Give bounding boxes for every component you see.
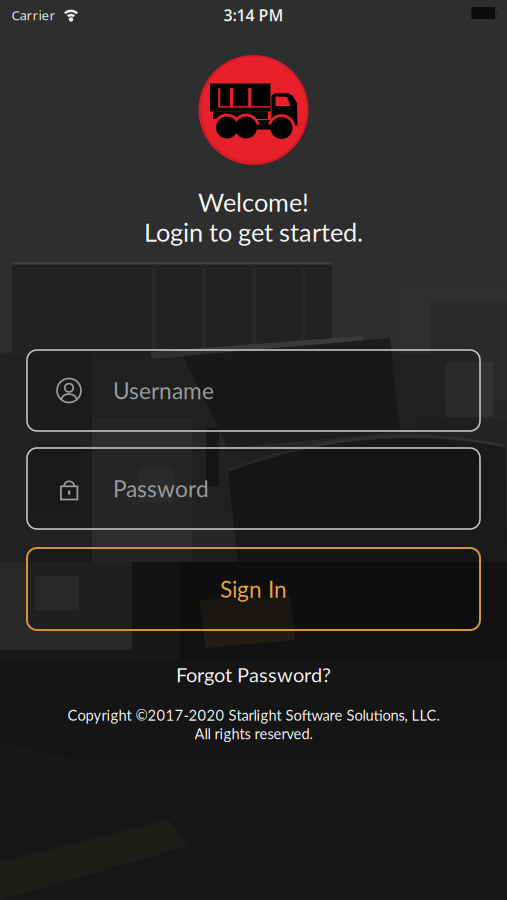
staticText: Sign In: [220, 575, 287, 603]
button[interactable]: Password: [27, 448, 480, 529]
staticText: Login to get started.: [144, 217, 363, 247]
button[interactable]: Sign In: [27, 548, 480, 630]
staticText: Carrier: [11, 6, 55, 24]
staticText: 3:14 PM: [223, 4, 283, 26]
staticText: Copyright ©2017-2020 Starlight Software …: [67, 706, 439, 724]
staticText: Password: [113, 475, 209, 502]
staticText: Forgot Password?: [176, 662, 331, 686]
staticText: All rights reserved.: [194, 725, 312, 742]
button[interactable]: Username: [27, 350, 480, 431]
staticText: Welcome!: [198, 187, 309, 217]
staticText: Username: [113, 377, 214, 404]
button[interactable]: Forgot Password?: [176, 662, 331, 686]
